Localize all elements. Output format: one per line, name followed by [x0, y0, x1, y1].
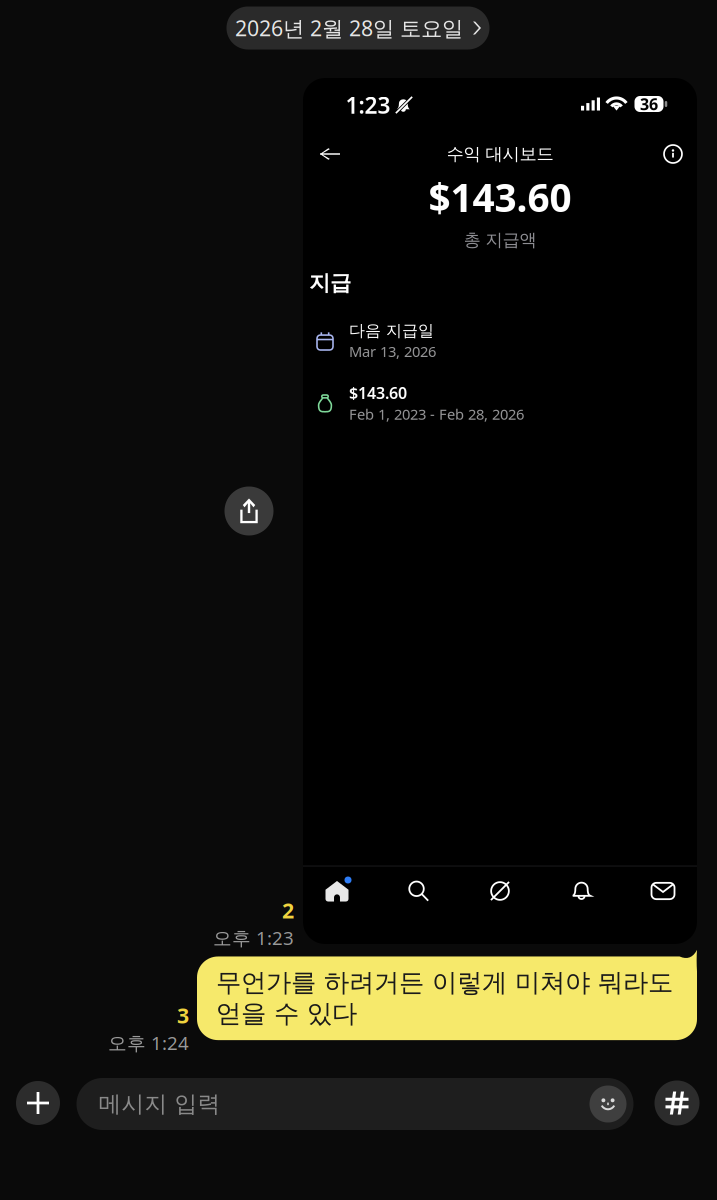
staticText: 2: [282, 896, 294, 924]
staticText: 2026년 2월 28일 토요일: [235, 14, 463, 42]
button[interactable]: $143.60: [317, 380, 677, 426]
button[interactable]: Share: [224, 486, 273, 535]
staticText: 오후 1:23: [213, 925, 294, 950]
button[interactable]: Info: [655, 136, 691, 172]
button[interactable]: 다음 지급일: [317, 318, 677, 364]
button[interactable]: Emoji: [589, 1085, 626, 1122]
staticText: $143.60: [349, 382, 407, 403]
staticText: Mar 13, 2026: [349, 342, 436, 361]
button[interactable]: Home: [306, 866, 368, 916]
button[interactable]: Messages: [632, 866, 694, 916]
staticText: Feb 1, 2023 - Feb 28, 2026: [349, 404, 524, 424]
staticText: 수익 대시보드: [446, 143, 553, 165]
staticText: 3: [177, 1001, 189, 1029]
staticText: 36: [640, 93, 658, 115]
button[interactable]: 2026년 2월 28일 토요일: [226, 6, 489, 49]
staticText: 1:23: [345, 90, 390, 120]
button[interactable]: Notifications: [550, 866, 612, 916]
button[interactable]: Search: [387, 866, 449, 916]
staticText: 무언가를 하려거든 이렇게 미쳐야 뭐라도 얻을 수 있다: [216, 967, 673, 1029]
staticText: 지급: [309, 270, 351, 296]
button[interactable]: Add attachment: [16, 1081, 60, 1125]
staticText: 메시지 입력: [98, 1090, 220, 1118]
staticText: 총 지급액: [463, 229, 536, 251]
button[interactable]: Back: [310, 135, 350, 172]
staticText: 오후 1:24: [108, 1030, 189, 1055]
button[interactable]: Shortcuts: [654, 1080, 699, 1125]
staticText: $143.60: [428, 171, 571, 223]
staticText: 다음 지급일: [349, 321, 434, 341]
button[interactable]: Discover: [469, 866, 531, 916]
